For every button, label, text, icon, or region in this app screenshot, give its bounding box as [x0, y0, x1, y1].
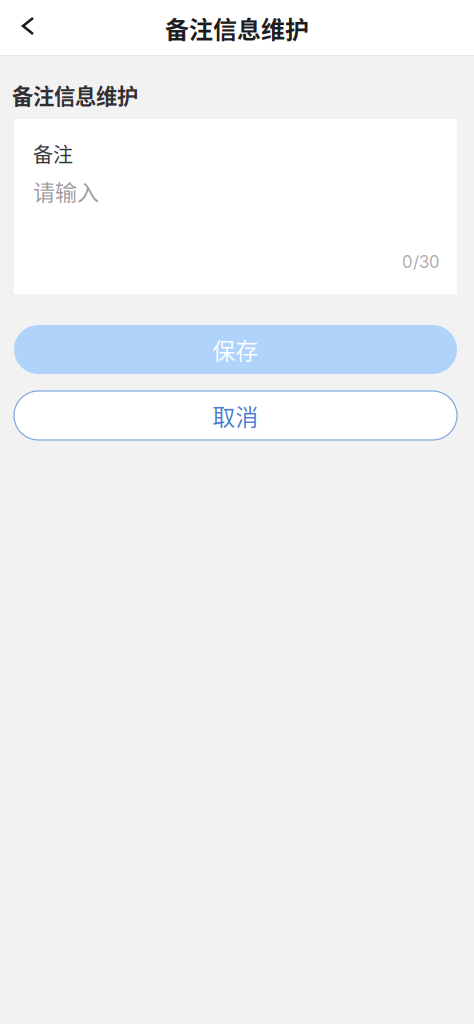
staticText: 备注信息维护 [165, 11, 309, 45]
button[interactable]: 保存 [14, 325, 457, 374]
staticText: 保存 [212, 333, 258, 366]
staticText: 取消 [212, 399, 258, 432]
staticText: 请输入 [33, 175, 99, 207]
staticText: 备注信息维护 [12, 80, 138, 110]
button[interactable]: 返回 [0, 0, 54, 56]
staticText: 备注 [33, 139, 73, 168]
staticText: 0/30 [402, 252, 440, 272]
button[interactable]: 备注 [14, 119, 457, 294]
button[interactable]: 取消 [14, 391, 457, 440]
